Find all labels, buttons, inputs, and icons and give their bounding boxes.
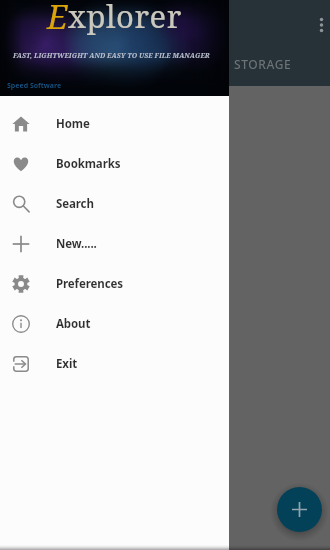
staticText: About [56,316,91,332]
staticText: Exit [56,356,78,372]
button[interactable]: Search [0,184,229,224]
button[interactable]: New..... [0,224,229,264]
staticText: Bookmarks [56,156,121,172]
button[interactable]: More options [308,12,330,37]
staticText: Search [56,196,94,212]
button[interactable]: About [0,304,229,344]
button[interactable]: Bookmarks [0,144,229,184]
staticText: STORAGE [234,56,292,72]
staticText: New..... [56,236,97,252]
staticText: FAST, LIGHTWEIGHT AND EASY TO USE FILE M… [13,51,210,60]
button[interactable]: Home [0,104,229,144]
staticText: Preferences [56,276,123,292]
button[interactable]: STORAGE [230,52,296,76]
staticText: Home [56,116,90,132]
button[interactable]: Exit [0,344,229,384]
staticText: E [47,0,68,39]
staticText: xplorer [68,0,182,37]
button[interactable]: Preferences [0,264,229,304]
button[interactable]: Add [277,487,322,532]
staticText: Speed Software [7,81,62,91]
